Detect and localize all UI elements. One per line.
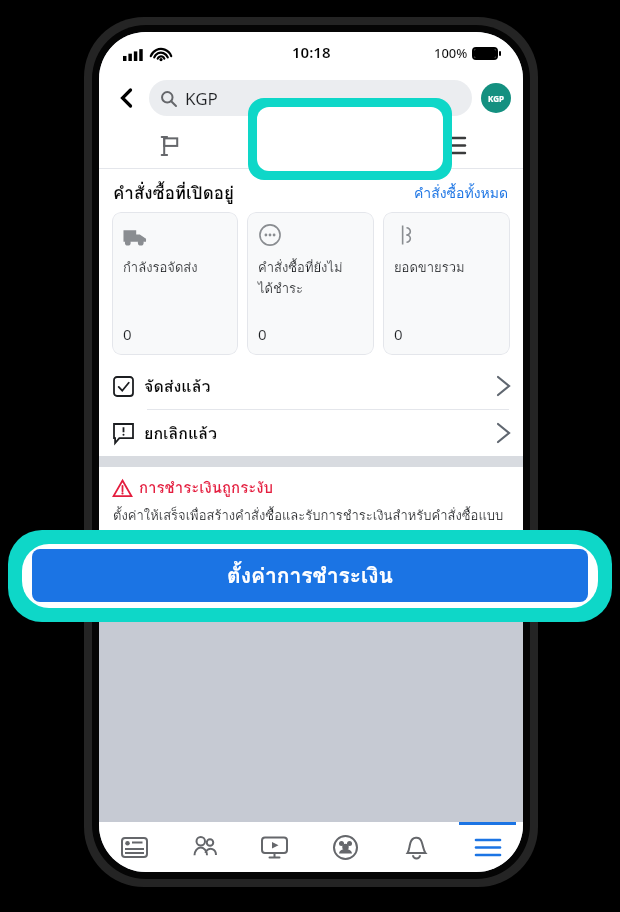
button[interactable]: Friends [169, 822, 239, 872]
staticText: ตั้งค่าให้เสร็จเพื่อสร้างคำสั่งซื้อและรั… [113, 505, 509, 547]
button[interactable]: ตั้งค่าการชำระเงิน [32, 549, 588, 602]
button[interactable]: ยอดขายรวม [383, 212, 510, 355]
staticText: 10:18 [292, 42, 331, 62]
staticText: การชำระเงินถูกระงับ [139, 476, 274, 500]
button[interactable]: Orders [241, 122, 382, 169]
staticText: ยอดขายรวม [394, 257, 465, 278]
staticText: KGP [488, 93, 504, 104]
button[interactable]: Watch [239, 822, 310, 872]
staticText: 0 [123, 324, 132, 344]
staticText: คำสั่งซื้อทั้งหมด [414, 182, 509, 204]
button[interactable]: คำสั่งซื้อทั้งหมด [414, 182, 509, 204]
button[interactable]: Profile [481, 83, 511, 113]
button[interactable]: Notifications [381, 822, 452, 872]
button[interactable]: Page [99, 122, 241, 169]
staticText: 0 [394, 324, 403, 344]
staticText: จัดส่งแล้ว [144, 374, 211, 399]
button[interactable]: กำลังรอจัดส่ง [112, 212, 238, 355]
button[interactable]: Back [111, 82, 143, 114]
button[interactable]: News Feed [99, 822, 169, 872]
button[interactable]: ยกเลิกแล้ว [99, 410, 523, 456]
button[interactable]: Menu [452, 822, 523, 872]
staticText: 100% [434, 44, 468, 62]
button[interactable]: KGP [149, 80, 472, 116]
staticText: KGP [185, 87, 218, 110]
staticText: คำสั่งซื้อที่เปิดอยู่ [113, 179, 234, 206]
button[interactable]: Groups [310, 822, 381, 872]
staticText: คำสั่งซื้อที่ยังไม่ ได้ชำระ [258, 257, 343, 299]
button[interactable]: คำสั่งซื้อที่ยังไม่ ได้ชำระ [247, 212, 374, 355]
staticText: กำลังรอจัดส่ง [123, 257, 198, 278]
staticText: 0 [258, 324, 267, 344]
staticText: ยกเลิกแล้ว [144, 421, 218, 446]
staticText: ตั้งค่าการชำระเงิน [227, 559, 393, 592]
button[interactable]: จัดส่งแล้ว [99, 363, 523, 409]
button[interactable]: Menu [382, 122, 523, 169]
